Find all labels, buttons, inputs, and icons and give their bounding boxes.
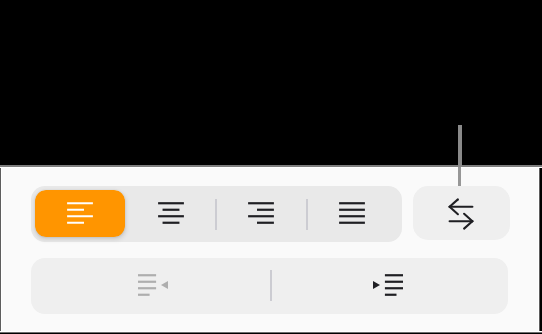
button[interactable]: Decrease indent <box>31 258 271 314</box>
button[interactable]: Align center <box>126 186 216 242</box>
button[interactable]: Justify <box>308 186 400 242</box>
button[interactable]: Increase indent <box>272 258 508 314</box>
button[interactable]: Align left <box>35 190 125 237</box>
button[interactable]: Align right <box>217 186 307 242</box>
button[interactable]: Text direction <box>413 186 510 240</box>
